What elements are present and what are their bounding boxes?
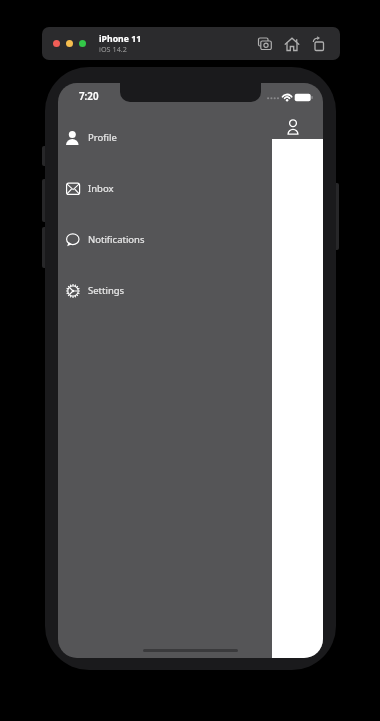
button[interactable] <box>272 139 323 658</box>
button[interactable]: Notifications <box>58 214 272 265</box>
button[interactable] <box>66 40 73 47</box>
staticText: Notifications <box>88 233 145 246</box>
button[interactable] <box>282 35 302 55</box>
button[interactable]: Inbox <box>58 163 272 214</box>
button[interactable] <box>285 118 301 134</box>
button[interactable] <box>255 35 275 55</box>
button[interactable] <box>79 40 86 47</box>
button[interactable] <box>308 35 328 55</box>
staticText: iPhone 11 <box>99 33 142 45</box>
staticText: 7:20 <box>79 90 99 103</box>
button[interactable]: Settings <box>58 265 272 316</box>
button[interactable] <box>53 40 60 47</box>
staticText: Settings <box>88 284 125 297</box>
button[interactable]: Profile <box>58 112 272 163</box>
staticText: Profile <box>88 131 117 144</box>
staticText: Inbox <box>88 182 114 195</box>
staticText: iOS 14.2 <box>99 44 127 54</box>
